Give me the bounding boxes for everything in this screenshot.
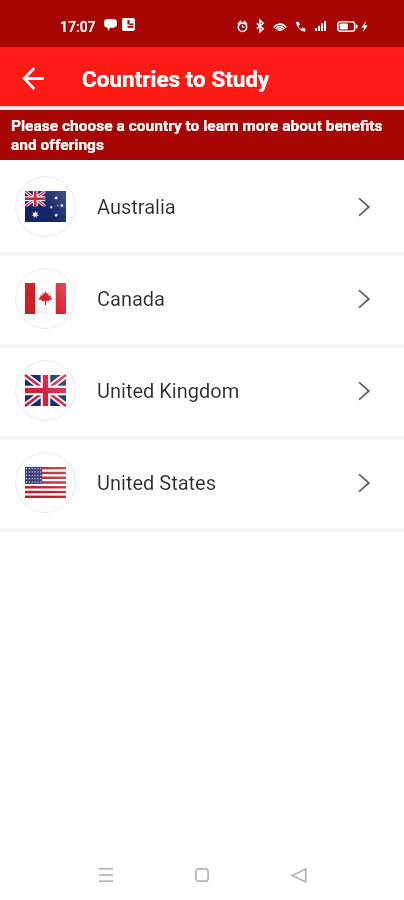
staticText: United Kingdom	[97, 379, 240, 402]
button[interactable]: Back	[11, 55, 55, 99]
button[interactable]: United States	[0, 436, 404, 528]
staticText: United States	[97, 471, 217, 494]
staticText: Canada	[97, 287, 165, 310]
button[interactable]: Canada	[0, 252, 404, 344]
button[interactable]: United Kingdom	[0, 344, 404, 436]
staticText: Australia	[97, 195, 176, 218]
button[interactable]: Home	[180, 853, 224, 897]
staticText: 17:07	[60, 19, 96, 35]
button[interactable]: Back	[277, 853, 321, 897]
button[interactable]: Australia	[0, 160, 404, 252]
button[interactable]: Recent apps	[84, 853, 128, 897]
staticText: Countries to Study	[82, 66, 270, 92]
staticText: Please choose a country to learn more ab…	[11, 117, 390, 154]
